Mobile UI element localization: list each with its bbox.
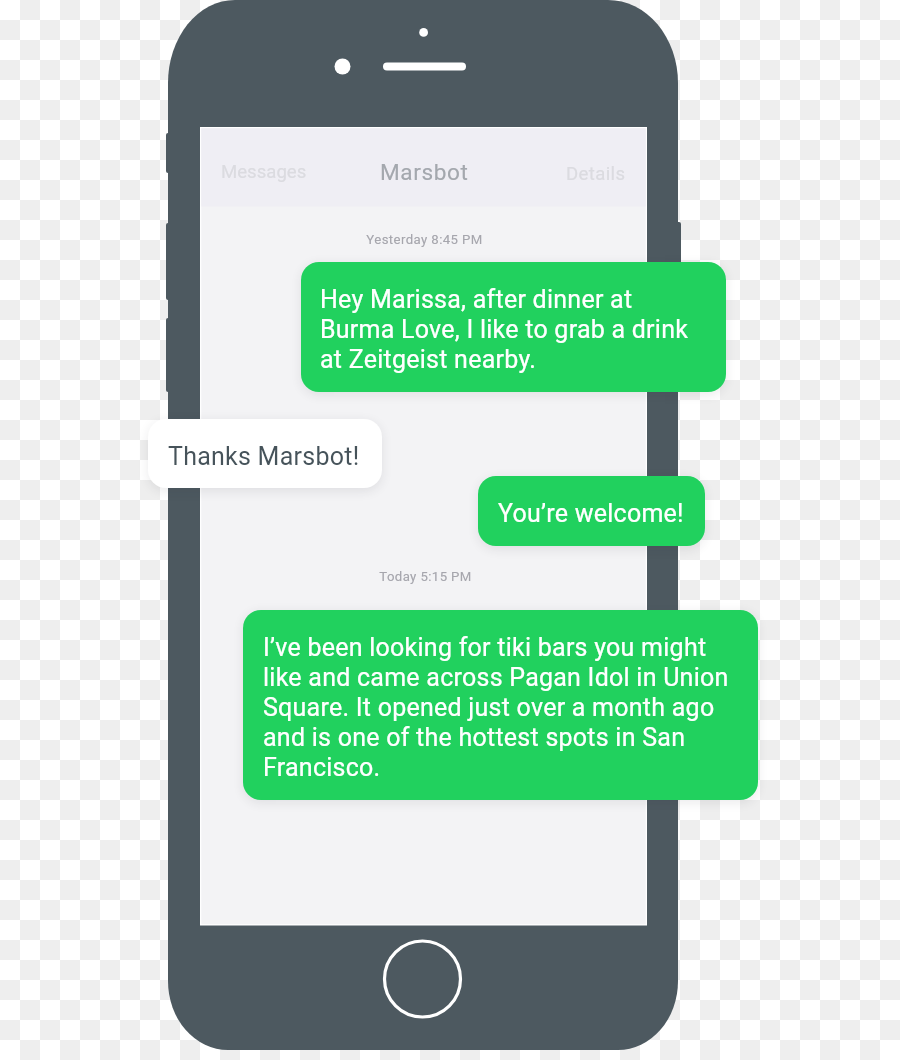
button[interactable]: Thanks Marsbot! — [148, 419, 382, 488]
staticText: I’ve been looking for tiki bars you migh… — [263, 633, 729, 782]
staticText: Details — [566, 163, 626, 185]
staticText: Thanks Marsbot! — [168, 442, 360, 471]
button[interactable]: Hey Marissa, after dinner at Burma Love,… — [301, 262, 726, 392]
staticText: Messages — [221, 161, 307, 183]
button[interactable]: Details — [566, 154, 636, 194]
staticText: Today 5:15 PM — [379, 569, 472, 584]
staticText: Marsbot — [380, 159, 469, 185]
staticText: Yesterday 8:45 PM — [366, 232, 483, 247]
button[interactable]: Home — [383, 940, 462, 1019]
staticText: Hey Marissa, after dinner at Burma Love,… — [320, 285, 689, 374]
button[interactable]: You’re welcome! — [478, 476, 705, 546]
button[interactable]: I’ve been looking for tiki bars you migh… — [243, 610, 758, 800]
staticText: You’re welcome! — [498, 499, 684, 528]
button[interactable]: Messages — [221, 152, 317, 192]
